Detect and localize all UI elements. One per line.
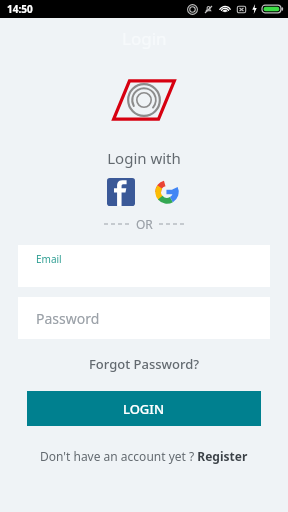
staticText: Login with: [0, 148, 288, 168]
staticText: Don't have an account yet ? Register: [40, 448, 248, 464]
button[interactable]: LOGIN: [27, 391, 261, 426]
button[interactable]: Email: [18, 245, 270, 287]
staticText: LOGIN: [123, 400, 165, 418]
button[interactable]: Login with Facebook: [107, 178, 135, 206]
staticText: 14:50: [7, 2, 33, 16]
staticText: Email: [36, 252, 62, 266]
button[interactable]: Password: [18, 297, 270, 339]
button[interactable]: Login with Google: [153, 178, 181, 206]
button[interactable]: Forgot Password?: [0, 351, 288, 377]
button[interactable]: Don't have an account yet ? Register: [0, 446, 288, 466]
staticText: Password: [36, 309, 100, 328]
staticText: Forgot Password?: [89, 355, 200, 373]
staticText: OR: [136, 216, 153, 232]
